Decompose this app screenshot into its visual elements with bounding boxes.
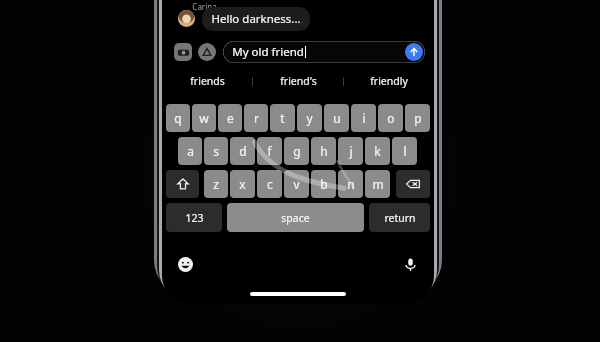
staticText: w: [199, 110, 209, 126]
staticText: 123: [185, 211, 204, 225]
staticText: g: [293, 143, 301, 159]
staticText: j: [349, 143, 353, 159]
button[interactable]: y: [297, 104, 322, 132]
staticText: t: [280, 110, 285, 126]
button[interactable]: My old friend: [223, 41, 425, 63]
staticText: n: [347, 176, 355, 192]
button[interactable]: Apps: [198, 43, 216, 61]
button[interactable]: s: [204, 137, 228, 165]
button[interactable]: l: [392, 137, 417, 165]
staticText: friends: [190, 74, 225, 88]
button[interactable]: Camera: [174, 43, 192, 61]
button[interactable]: t: [270, 104, 295, 132]
button[interactable]: space: [227, 203, 364, 232]
button[interactable]: return: [369, 203, 430, 232]
staticText: b: [320, 176, 328, 192]
button[interactable]: f: [257, 137, 282, 165]
button[interactable]: p: [405, 104, 430, 132]
staticText: o: [387, 110, 395, 126]
staticText: c: [267, 176, 273, 192]
staticText: s: [213, 143, 219, 159]
button[interactable]: i: [351, 104, 376, 132]
staticText: i: [362, 110, 366, 126]
button[interactable]: Backspace: [396, 170, 430, 198]
button[interactable]: m: [365, 170, 390, 198]
button[interactable]: e: [218, 104, 242, 132]
staticText: f: [267, 143, 272, 159]
staticText: friendly: [370, 74, 408, 88]
staticText: q: [174, 110, 182, 126]
button[interactable]: k: [365, 137, 390, 165]
staticText: z: [213, 176, 219, 192]
staticText: v: [293, 176, 300, 192]
button[interactable]: d: [230, 137, 255, 165]
button[interactable]: v: [284, 170, 309, 198]
staticText: y: [306, 110, 313, 126]
button[interactable]: o: [378, 104, 403, 132]
button[interactable]: Hello darkness...: [202, 7, 310, 31]
button[interactable]: Dictation: [403, 257, 418, 272]
button[interactable]: Emoji: [178, 257, 193, 272]
button[interactable]: b: [311, 170, 336, 198]
staticText: e: [227, 110, 234, 126]
staticText: k: [374, 143, 381, 159]
button[interactable]: j: [338, 137, 363, 165]
staticText: l: [403, 143, 407, 159]
button[interactable]: Send: [405, 43, 423, 61]
button[interactable]: g: [284, 137, 309, 165]
button[interactable]: 123: [166, 203, 222, 232]
staticText: m: [372, 176, 384, 192]
staticText: p: [414, 110, 422, 126]
staticText: friend's: [280, 74, 317, 88]
button[interactable]: w: [192, 104, 216, 132]
staticText: Hello darkness...: [211, 11, 301, 27]
staticText: x: [239, 176, 246, 192]
button[interactable]: x: [230, 170, 255, 198]
button[interactable]: c: [257, 170, 282, 198]
staticText: Carina: [192, 1, 217, 12]
button[interactable]: friend's: [253, 70, 343, 92]
button[interactable]: friends: [162, 70, 252, 92]
button[interactable]: n: [338, 170, 363, 198]
staticText: u: [333, 110, 341, 126]
staticText: h: [320, 143, 328, 159]
button[interactable]: u: [324, 104, 349, 132]
staticText: d: [239, 143, 247, 159]
button[interactable]: z: [204, 170, 228, 198]
staticText: My old friend: [232, 44, 304, 60]
staticText: space: [281, 211, 310, 225]
button[interactable]: r: [244, 104, 268, 132]
button[interactable]: h: [311, 137, 336, 165]
button[interactable]: q: [166, 104, 190, 132]
staticText: a: [187, 143, 194, 159]
staticText: r: [254, 110, 259, 126]
button[interactable]: Shift: [166, 170, 199, 198]
button[interactable]: friendly: [344, 70, 434, 92]
staticText: return: [384, 211, 416, 225]
button[interactable]: a: [178, 137, 202, 165]
